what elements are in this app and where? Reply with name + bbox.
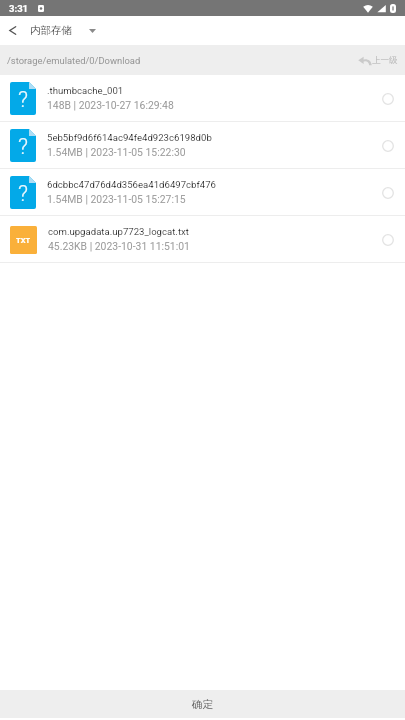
button[interactable]: TXT (0, 216, 405, 263)
button[interactable]: Select (376, 228, 400, 252)
staticText: 148B | 2023-10-27 16:29:48 (47, 99, 174, 111)
button[interactable]: ? (0, 169, 405, 216)
staticText: ? (18, 181, 28, 207)
button[interactable]: Expand (82, 20, 102, 42)
staticText: /storage/emulated/0/Download (7, 55, 141, 66)
staticText: 45.23KB | 2023-10-31 11:51:01 (48, 240, 190, 252)
staticText: 1.54MB | 2023-11-05 15:27:15 (47, 193, 186, 205)
button[interactable]: 确定 (0, 690, 405, 718)
staticText: 3:31 (9, 3, 29, 14)
button[interactable]: ? (0, 75, 405, 122)
button[interactable]: 上一级 (357, 55, 399, 66)
staticText: 6dcbbc47d76d4d356ea41d6497cbf476 (47, 179, 216, 190)
staticText: TXT (16, 236, 31, 245)
staticText: 上一级 (372, 55, 398, 66)
staticText: .thumbcache_001 (47, 85, 124, 96)
button[interactable]: Select (376, 87, 400, 111)
button[interactable]: Back (0, 16, 24, 45)
button[interactable]: ? (0, 122, 405, 169)
button[interactable]: Select (376, 181, 400, 205)
staticText: 内部存储 (30, 24, 72, 37)
staticText: 确定 (192, 698, 213, 711)
staticText: 1.54MB | 2023-11-05 15:22:30 (47, 146, 186, 158)
staticText: ? (18, 87, 28, 113)
button[interactable]: Select (376, 134, 400, 158)
staticText: ? (18, 134, 28, 160)
staticText: 5eb5bf9d6f614ac94fe4d923c6198d0b (47, 132, 212, 143)
staticText: com.upgadata.up7723_logcat.txt (48, 226, 189, 237)
